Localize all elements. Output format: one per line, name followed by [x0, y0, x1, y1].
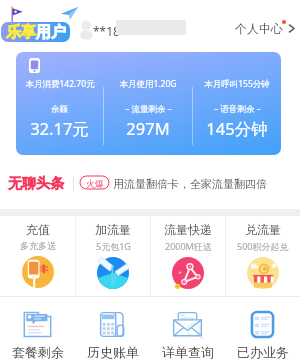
staticText: 余额	[51, 104, 68, 115]
staticText: **18	[93, 23, 120, 39]
staticText: 兑流量	[245, 222, 281, 237]
staticText: 297M	[126, 117, 170, 139]
staticText: 用流量翻倍卡，全家流量翻四倍	[113, 177, 267, 191]
staticText: －流量剩余－	[123, 104, 174, 115]
staticText: 500积分起兑	[237, 240, 289, 252]
staticText: 用户	[36, 23, 66, 42]
staticText: 流量快递	[164, 222, 212, 237]
staticText: 本月消费142.70元	[25, 78, 95, 90]
button[interactable]: 个人中心	[231, 17, 299, 40]
staticText: 本月呼叫155分钟	[204, 78, 270, 90]
staticText: 乐享	[6, 23, 36, 42]
staticText: 32.17元	[30, 117, 89, 140]
button[interactable]: 详单查询	[150, 297, 225, 360]
staticText: 历史账单	[87, 344, 139, 360]
staticText: 5元包1G	[96, 240, 131, 252]
button[interactable]: 流量快递	[151, 216, 225, 296]
button[interactable]: 无聊头条	[0, 158, 300, 209]
button[interactable]: 历史账单	[75, 297, 150, 360]
staticText: 充值	[26, 222, 50, 237]
staticText: 已办业务	[237, 344, 289, 360]
staticText: 多充多送	[20, 240, 56, 251]
staticText: －语音剩余－	[212, 104, 263, 115]
staticText: 无聊头条	[8, 175, 64, 193]
staticText: 详单查询	[162, 344, 214, 360]
staticText: 火爆	[86, 178, 104, 189]
button[interactable]: 充值	[0, 216, 75, 296]
button[interactable]: 已办业务	[225, 297, 300, 360]
staticText: 2000M狂送	[165, 240, 212, 252]
button[interactable]: 乐享	[1, 22, 70, 42]
button[interactable]: 套餐剩余	[0, 297, 75, 360]
staticText: 套餐剩余	[12, 344, 64, 360]
button[interactable]: 加流量	[76, 216, 150, 296]
button[interactable]: 兑流量	[226, 216, 300, 296]
staticText: 145分钟	[206, 117, 268, 140]
staticText: 个人中心	[235, 21, 283, 36]
staticText: 加流量	[95, 222, 131, 237]
button[interactable]: 本月消费142.70元	[16, 52, 281, 155]
staticText: 本月使用1.20G	[119, 78, 177, 90]
